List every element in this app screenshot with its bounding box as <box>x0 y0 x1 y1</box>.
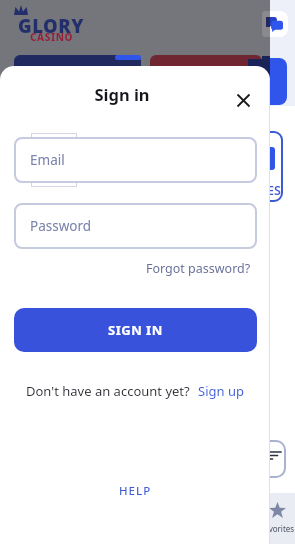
button[interactable]: HELP <box>119 483 152 499</box>
staticText: SIGN IN <box>108 321 163 339</box>
staticText: Email <box>30 151 65 169</box>
staticText: ES <box>267 182 281 199</box>
button[interactable] <box>229 86 257 114</box>
button[interactable]: SIGN IN <box>14 308 257 352</box>
button[interactable] <box>246 131 283 202</box>
button[interactable]: Sign up <box>198 382 244 400</box>
staticText: CASINO <box>30 30 74 44</box>
staticText: Password <box>30 217 92 235</box>
button[interactable]: Email <box>14 137 257 183</box>
staticText: Don't have an account yet? <box>26 382 190 400</box>
button[interactable]: Password <box>14 203 257 249</box>
button[interactable]: Forgot password? <box>146 260 251 277</box>
button[interactable]: Favorites <box>258 495 295 544</box>
staticText: Favorites <box>260 523 295 534</box>
staticText: GLORY <box>18 13 85 38</box>
button[interactable] <box>252 440 286 478</box>
button[interactable] <box>262 11 288 37</box>
staticText: Sign in <box>3 83 241 105</box>
